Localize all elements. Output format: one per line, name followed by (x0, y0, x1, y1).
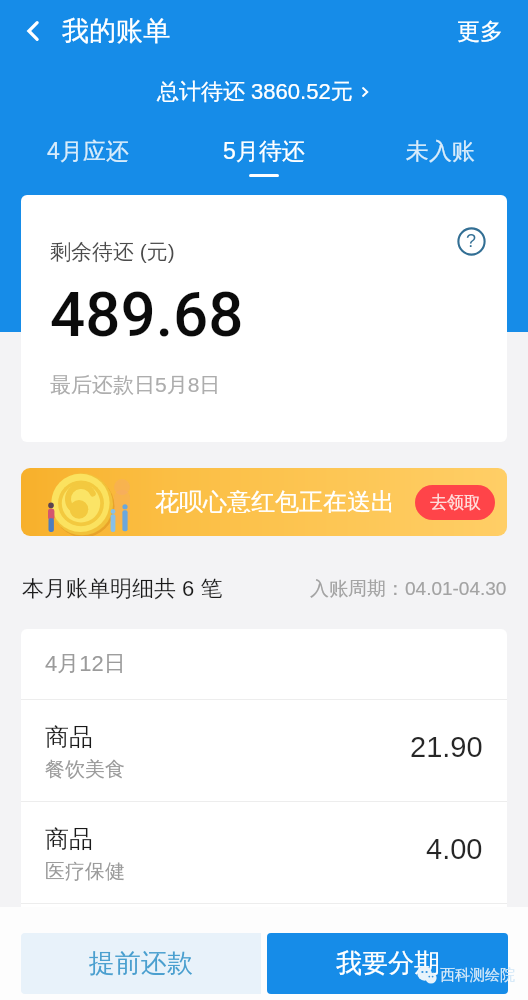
staticText: 我的账单 (62, 14, 170, 48)
staticText: 4月12日 (45, 650, 126, 678)
staticText: 4.00 (426, 833, 483, 865)
staticText: 剩余待还 (元) (50, 239, 175, 265)
staticText: 花呗心意红包正在送出 (155, 487, 395, 517)
staticText: 入账周期：04.01-04.30 (310, 577, 507, 601)
staticText: ? (466, 231, 477, 251)
staticText: 医疗保健 (45, 859, 125, 884)
button[interactable]: 提前还款 (21, 933, 261, 994)
staticText: 5月待还 (223, 137, 305, 166)
staticText: 最后还款日5月8日 (50, 372, 221, 398)
staticText: 总计待还 3860.52元 (157, 78, 353, 106)
staticText: 21.90 (410, 731, 483, 763)
button[interactable]: 5月待还 (176, 0, 352, 190)
staticText: 商品 (45, 824, 93, 854)
button[interactable]: 总计待还 3860.52元 (149, 73, 380, 111)
button[interactable]: 商品 (21, 700, 507, 801)
button[interactable]: 商品 (21, 802, 507, 903)
staticText: 4月应还 (47, 137, 129, 166)
staticText: 我要分期 (336, 947, 440, 980)
button[interactable]: 更多 (449, 11, 511, 52)
staticText: 提前还款 (89, 947, 193, 980)
button[interactable]: 我要分期 (267, 933, 508, 994)
staticText: 商品 (45, 722, 93, 752)
button[interactable]: 4月应还 (0, 0, 176, 190)
staticText: 更多 (457, 17, 503, 46)
button[interactable]: 未入账 (352, 0, 528, 190)
button[interactable]: 花呗心意红包正在送出 (21, 468, 507, 536)
staticText: 去领取 (430, 492, 481, 513)
staticText: 489.68 (50, 278, 244, 351)
staticText: 未入账 (406, 137, 475, 166)
button[interactable]: Back (11, 9, 55, 53)
staticText: 餐饮美食 (45, 757, 125, 782)
button[interactable]: 去领取 (415, 485, 495, 520)
button[interactable]: Help (456, 226, 486, 256)
staticText: 西科测绘院 (440, 966, 515, 985)
staticText: 本月账单明细共 6 笔 (22, 575, 223, 603)
